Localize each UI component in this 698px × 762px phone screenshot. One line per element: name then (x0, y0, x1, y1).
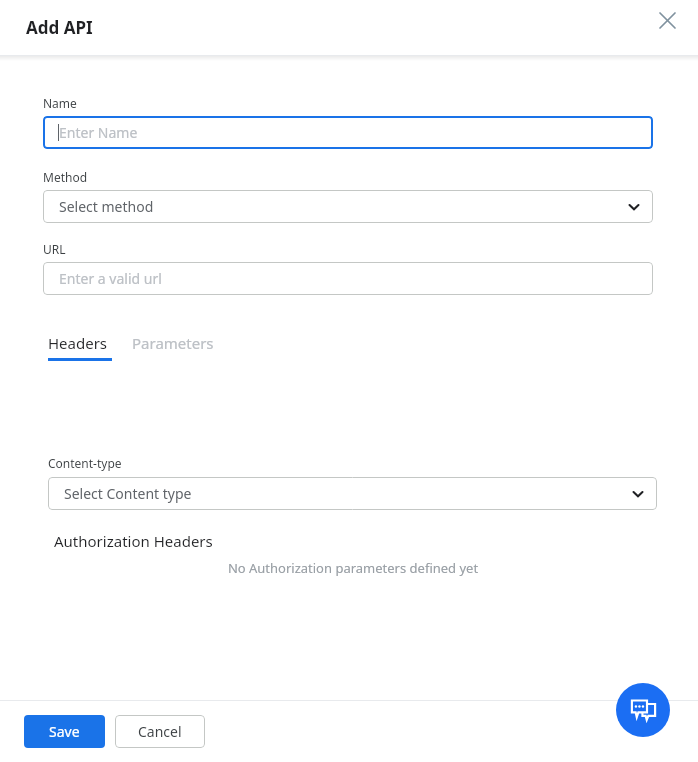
button[interactable]: Chat support (616, 683, 670, 737)
staticText: Add API (26, 16, 93, 39)
staticText: Enter a valid url (59, 269, 162, 288)
button[interactable]: Select method (43, 190, 653, 223)
staticText: Parameters (132, 333, 214, 353)
staticText: Authorization Headers (54, 531, 213, 551)
button[interactable]: Enter Name (43, 116, 653, 149)
staticText: No Authorization parameters defined yet (48, 559, 658, 577)
button[interactable]: Close (645, 0, 689, 42)
button[interactable]: Headers (44, 329, 112, 357)
button[interactable]: Save (24, 715, 105, 748)
staticText: Method (43, 169, 88, 185)
staticText: Cancel (138, 722, 182, 741)
staticText: Headers (48, 333, 108, 353)
button[interactable]: Cancel (115, 715, 205, 748)
button[interactable]: Enter a valid url (43, 262, 653, 295)
staticText: Select method (59, 197, 154, 216)
staticText: URL (43, 241, 66, 257)
staticText: Content-type (48, 455, 122, 471)
staticText: Name (43, 95, 77, 111)
button[interactable]: Select Content type (48, 477, 657, 510)
button[interactable]: Parameters (128, 329, 218, 357)
staticText: Select Content type (64, 484, 192, 503)
staticText: Enter Name (59, 123, 138, 142)
staticText: Save (49, 722, 80, 741)
